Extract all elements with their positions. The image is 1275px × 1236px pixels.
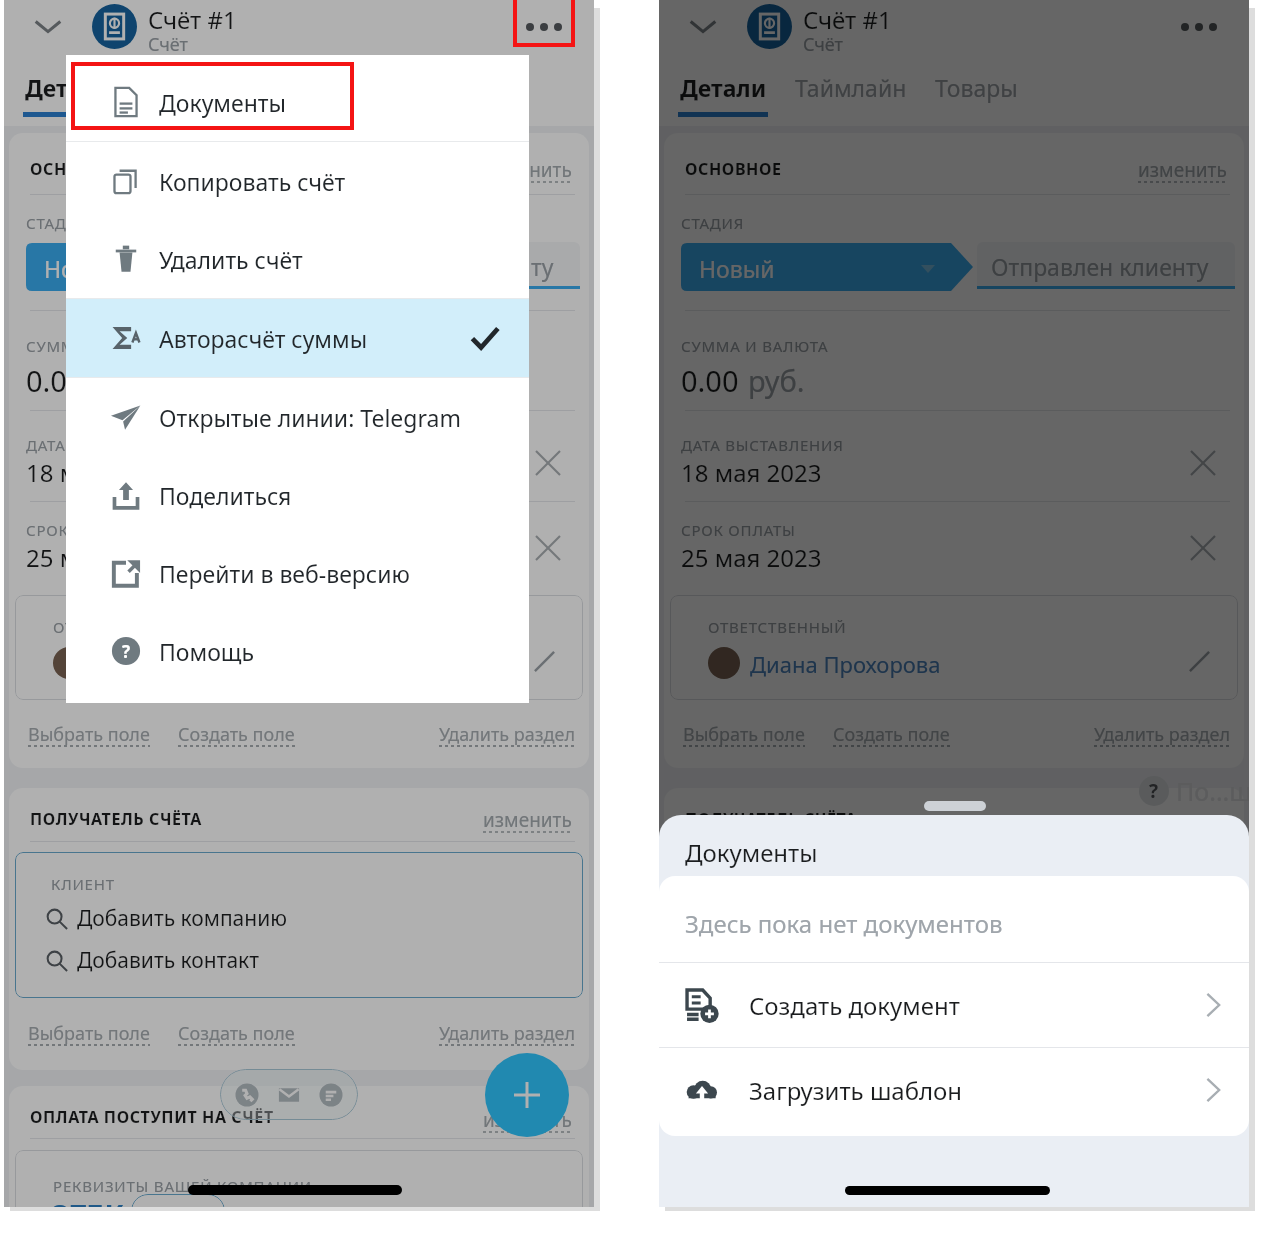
staticText: Удалить раздел xyxy=(439,1021,575,1046)
button[interactable]: Товары xyxy=(935,57,1018,117)
button[interactable]: Добавить компанию xyxy=(700,904,942,933)
button[interactable]: Перейти в веб-версию xyxy=(66,534,529,612)
button[interactable]: Копировать счёт xyxy=(66,142,529,220)
staticText: ОТВЕТСТВЕННЫЙ xyxy=(53,617,192,637)
button[interactable]: Новый xyxy=(26,243,318,291)
button[interactable]: Call xyxy=(884,1077,920,1113)
staticText: ? xyxy=(122,640,131,663)
button[interactable]: Открытые линии: Telegram xyxy=(66,378,529,456)
staticText: изменить xyxy=(1138,157,1227,183)
staticText: СРОК ОПЛАТЫ xyxy=(26,520,141,540)
button[interactable]: Детали xyxy=(680,57,767,117)
staticText: Авторасчёт суммы xyxy=(159,323,368,354)
staticText: ОСНОВНОЕ xyxy=(685,158,782,180)
button[interactable]: Отправлен клиенту xyxy=(977,242,1235,288)
button[interactable]: Добавить контакт xyxy=(700,946,915,975)
button[interactable]: Удалить раздел xyxy=(439,1021,575,1046)
button[interactable]: ? xyxy=(66,612,529,690)
button[interactable]: Edit xyxy=(1182,643,1218,679)
button[interactable]: Collapse xyxy=(28,6,68,46)
button[interactable]: изменить xyxy=(483,807,572,833)
button[interactable]: Новый xyxy=(681,243,973,291)
staticText: Удалить раздел xyxy=(439,722,575,747)
button[interactable]: Создать поле xyxy=(178,1021,295,1046)
button[interactable]: Email xyxy=(926,1077,962,1113)
staticText: Добавить контакт xyxy=(732,946,915,975)
button[interactable]: Детали xyxy=(25,57,112,117)
button[interactable]: Email xyxy=(271,1077,307,1113)
button[interactable]: Chat xyxy=(313,1077,349,1113)
staticText: СУММА И ВАЛЮТА xyxy=(26,336,174,356)
button[interactable]: Выбрать поле xyxy=(683,1021,805,1046)
button[interactable]: Удалить счёт xyxy=(66,220,529,298)
staticText: Загрузить шаблон xyxy=(749,1074,963,1107)
button[interactable]: изменить xyxy=(483,157,572,183)
staticText: РЕКВИЗИТЫ ВАШЕЙ КОМПАНИИ xyxy=(53,1176,312,1196)
button[interactable]: Clear xyxy=(530,445,566,481)
button[interactable]: Clear xyxy=(1185,530,1221,566)
staticText: ДАТА ВЫСТАВЛЕНИЯ xyxy=(681,435,844,455)
staticText: СРОК ОПЛАТЫ xyxy=(681,520,796,540)
staticText: КЛИЕНТ xyxy=(51,874,115,894)
button[interactable]: Создать поле xyxy=(178,722,295,747)
staticText: Диана Прохорова xyxy=(750,649,941,679)
button[interactable]: изменить xyxy=(483,1107,572,1133)
button[interactable]: Add xyxy=(485,1053,569,1137)
button[interactable]: Авторасчёт суммы xyxy=(66,299,529,377)
staticText: Документы xyxy=(685,836,818,869)
staticText: По...щь xyxy=(1176,774,1249,808)
button[interactable]: Выбрать поле xyxy=(28,722,150,747)
staticText: 0.00 xyxy=(26,361,84,400)
staticText: ОТБК xyxy=(49,1196,124,1207)
staticText: Счёт xyxy=(148,32,188,57)
button[interactable]: Выбрать поле xyxy=(28,1021,150,1046)
staticText: Новый xyxy=(44,253,120,284)
button[interactable]: Поделиться xyxy=(66,456,529,534)
button[interactable]: Документы xyxy=(66,63,529,141)
button[interactable]: Создать поле xyxy=(833,722,950,747)
staticText: Счёт #1 xyxy=(148,3,237,36)
button[interactable]: Clear xyxy=(530,530,566,566)
button[interactable]: Таймлайн xyxy=(140,57,252,117)
staticText: Товары xyxy=(935,72,1018,103)
button[interactable]: Добавить контакт xyxy=(45,946,260,975)
button[interactable]: изменить xyxy=(1138,157,1227,183)
staticText: 18 мая 2023 xyxy=(26,456,167,489)
button[interactable]: Загрузить шаблон xyxy=(659,1048,1249,1132)
staticText: ОТВЕТСТВЕННЫЙ xyxy=(708,617,847,637)
button[interactable]: Таймлайн xyxy=(795,57,907,117)
button[interactable]: Выбрать поле xyxy=(683,722,805,747)
button[interactable]: Удалить раздел xyxy=(1094,722,1230,747)
button[interactable]: More options xyxy=(1173,8,1225,46)
button[interactable]: More options xyxy=(518,8,570,46)
button[interactable]: Создать документ xyxy=(659,963,1249,1047)
button[interactable]: Call xyxy=(229,1077,265,1113)
staticText: Помощь xyxy=(159,636,255,667)
button[interactable]: Add xyxy=(1140,1053,1224,1137)
staticText: Детали xyxy=(25,72,112,103)
button[interactable]: Collapse xyxy=(683,6,723,46)
button[interactable]: изменить xyxy=(1138,807,1227,833)
button[interactable]: Clear xyxy=(1185,445,1221,481)
staticText: Создать поле xyxy=(833,722,950,747)
button[interactable]: Товары xyxy=(280,57,363,117)
button[interactable]: Удалить раздел xyxy=(439,722,575,747)
staticText: Выбрать поле xyxy=(683,1021,805,1046)
staticText: РЕКВИЗИТЫ ВАШЕЙ КОМПАНИИ xyxy=(708,1176,967,1196)
staticText: СТАДИЯ xyxy=(681,213,745,233)
button[interactable]: Отправлен клиенту xyxy=(322,242,580,288)
staticText: руб. xyxy=(748,361,805,400)
button[interactable]: Help xyxy=(1139,772,1249,810)
button[interactable]: Edit xyxy=(527,643,563,679)
staticText: 25 мая 2023 xyxy=(681,541,822,574)
staticText: руб. xyxy=(93,361,150,400)
staticText: Удалить раздел xyxy=(1094,722,1230,747)
staticText: изменить xyxy=(483,157,572,183)
button[interactable]: Добавить компанию xyxy=(45,904,287,933)
staticText: 25 мая 2023 xyxy=(26,541,167,574)
